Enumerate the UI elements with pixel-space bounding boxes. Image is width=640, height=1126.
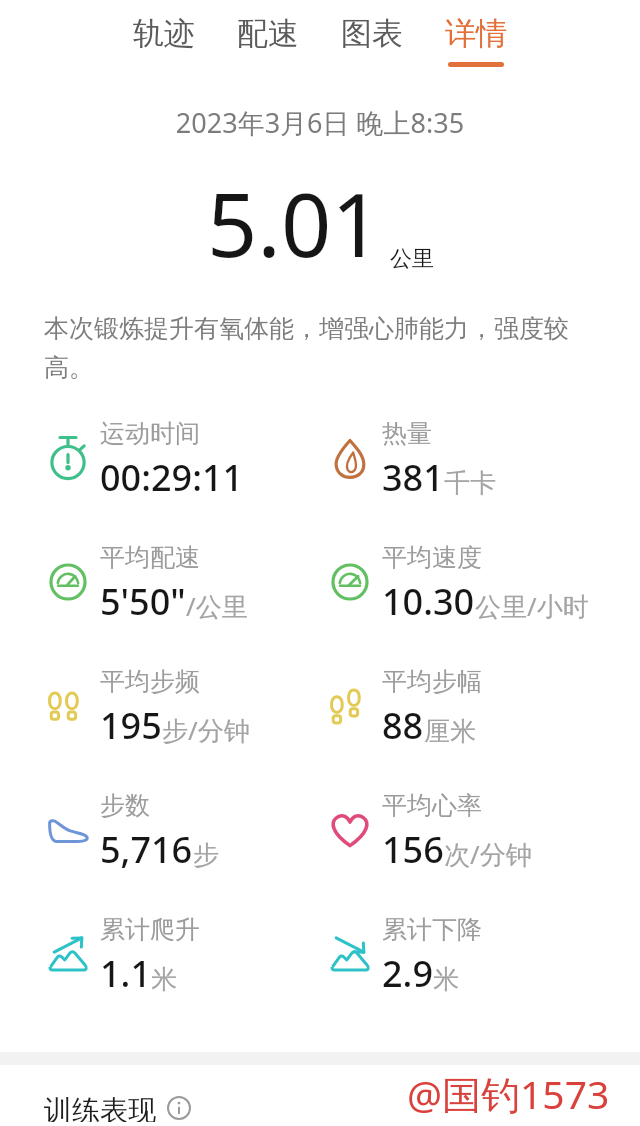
staticText: 详情 bbox=[445, 14, 507, 53]
staticText: 156 bbox=[382, 825, 444, 874]
staticText: 本次锻炼提升有氧体能，增强心肺能力，强度较高。 bbox=[44, 313, 596, 384]
staticText: 米 bbox=[151, 963, 177, 996]
other: Speed bbox=[45, 559, 91, 605]
staticText: /公里 bbox=[186, 588, 248, 624]
button[interactable]: Steps bbox=[0, 782, 320, 906]
other: Duration bbox=[45, 435, 91, 481]
staticText: 步/分钟 bbox=[162, 712, 250, 748]
staticText: 运动时间 bbox=[100, 418, 200, 449]
staticText: 配速 bbox=[237, 14, 299, 53]
staticText: 厘米 bbox=[424, 715, 476, 748]
staticText: 公里/小时 bbox=[475, 588, 589, 624]
staticText: 平均心率 bbox=[382, 790, 482, 821]
button[interactable]: 详情 bbox=[424, 0, 528, 81]
button[interactable]: 配速 bbox=[216, 0, 320, 81]
staticText: 千卡 bbox=[444, 467, 496, 500]
staticText: 平均步幅 bbox=[382, 666, 482, 697]
button[interactable]: Total descent bbox=[320, 906, 640, 1030]
button[interactable]: Heart rate bbox=[320, 782, 640, 906]
button[interactable]: Step metric bbox=[0, 658, 320, 782]
staticText: 381 bbox=[382, 453, 444, 502]
button[interactable]: Speed bbox=[0, 534, 320, 658]
staticText: 平均配速 bbox=[100, 542, 200, 573]
other: Total ascent bbox=[45, 931, 91, 977]
staticText: 平均速度 bbox=[382, 542, 482, 573]
staticText: 88 bbox=[382, 701, 424, 750]
button[interactable]: 图表 bbox=[320, 0, 424, 81]
staticText: 步 bbox=[193, 839, 219, 872]
button[interactable]: Step metric bbox=[320, 658, 640, 782]
button[interactable]: Total ascent bbox=[0, 906, 320, 1030]
staticText: 米 bbox=[433, 963, 459, 996]
staticText: @国钓1573 bbox=[407, 1067, 610, 1120]
staticText: 平均步频 bbox=[100, 666, 200, 697]
staticText: 1.1 bbox=[100, 949, 151, 998]
button[interactable]: Speed bbox=[320, 534, 640, 658]
other: Total descent bbox=[327, 931, 373, 977]
staticText: 训练表现 bbox=[44, 1093, 156, 1122]
other: Step metric bbox=[327, 683, 373, 729]
staticText: 195 bbox=[100, 701, 162, 750]
other: Heart rate bbox=[327, 807, 373, 853]
button[interactable]: Calories bbox=[320, 410, 640, 534]
staticText: 00:29:11 bbox=[100, 453, 244, 502]
staticText: 公里 bbox=[390, 245, 434, 273]
staticText: 步数 bbox=[100, 790, 150, 821]
other: Speed bbox=[327, 559, 373, 605]
staticText: 次/分钟 bbox=[444, 836, 532, 872]
staticText: 2023年3月6日 晚上8:35 bbox=[0, 104, 640, 141]
staticText: 10.30 bbox=[382, 577, 475, 626]
other: Steps bbox=[45, 807, 91, 853]
staticText: 累计爬升 bbox=[100, 914, 200, 945]
staticText: 5,716 bbox=[100, 825, 193, 874]
staticText: 轨迹 bbox=[133, 14, 195, 53]
button[interactable]: 轨迹 bbox=[112, 0, 216, 81]
staticText: 热量 bbox=[382, 418, 432, 449]
button[interactable]: 训练表现 bbox=[0, 1089, 640, 1126]
other: Step metric bbox=[45, 683, 91, 729]
other: Calories bbox=[327, 435, 373, 481]
other: Info bbox=[166, 1095, 192, 1121]
staticText: 5'50" bbox=[100, 577, 186, 626]
staticText: 5.01 bbox=[207, 163, 382, 283]
staticText: 累计下降 bbox=[382, 914, 482, 945]
staticText: 2.9 bbox=[382, 949, 433, 998]
button[interactable]: Duration bbox=[0, 410, 320, 534]
staticText: 图表 bbox=[341, 14, 403, 53]
